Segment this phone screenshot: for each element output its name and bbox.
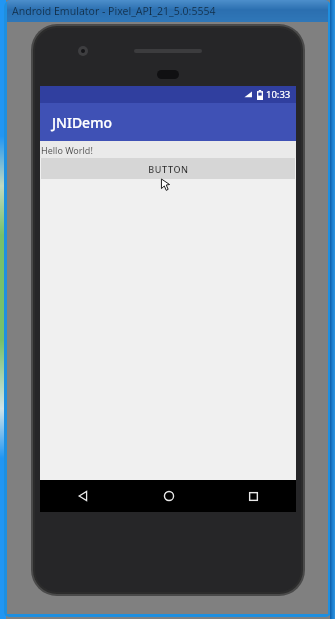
staticText: 10:33 xyxy=(266,88,291,101)
button[interactable]: BUTTON xyxy=(41,158,295,179)
button[interactable]: Back xyxy=(40,480,126,512)
staticText: Hello World! xyxy=(41,144,93,156)
button[interactable]: Recent apps xyxy=(211,480,296,512)
staticText: JNIDemo xyxy=(52,113,112,132)
staticText: BUTTON xyxy=(148,163,189,175)
staticText: Android Emulator - Pixel_API_21_5.0:5554 xyxy=(12,4,216,18)
button[interactable]: Home xyxy=(126,480,211,512)
